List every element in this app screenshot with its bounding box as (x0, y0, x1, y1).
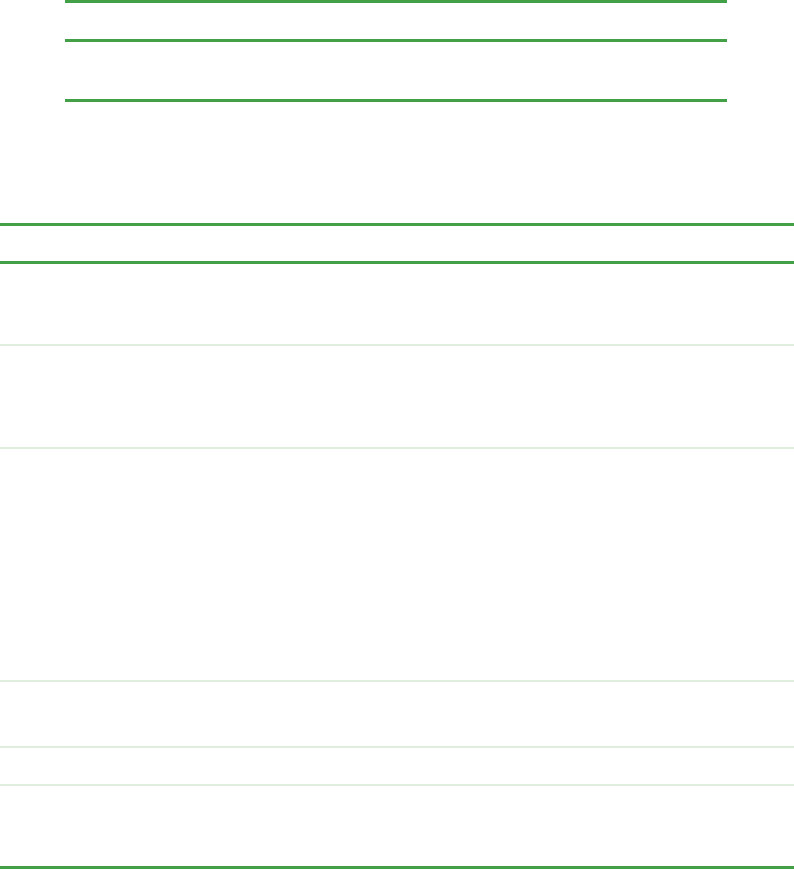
button[interactable] (0, 226, 794, 309)
button[interactable] (0, 412, 794, 645)
button[interactable] (0, 711, 794, 749)
button[interactable] (0, 749, 794, 831)
button[interactable] (0, 645, 794, 711)
button[interactable]: Document page with data table (0, 0, 794, 870)
button[interactable] (0, 309, 794, 412)
